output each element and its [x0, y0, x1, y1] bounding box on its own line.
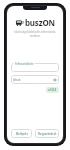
- button[interactable]: Jelszó: [11, 75, 59, 84]
- staticText: Belépés: [16, 132, 28, 136]
- button[interactable]: Regisztráció: [35, 129, 59, 138]
- staticText: buszON: [25, 17, 55, 28]
- staticText: Regisztráció: [38, 132, 57, 136]
- button[interactable]: Belépés: [11, 129, 32, 138]
- staticText: v3.04: [48, 88, 57, 92]
- button[interactable]: Jelszó megjelenítése: [52, 77, 57, 82]
- button[interactable]: v3.04: [46, 87, 59, 93]
- staticText: Felhasználónév: [15, 62, 34, 66]
- staticText: Jelszó: [13, 78, 21, 82]
- button[interactable]: [11, 63, 59, 72]
- staticText: közösségi közlekedés információs rendsze…: [10, 30, 60, 38]
